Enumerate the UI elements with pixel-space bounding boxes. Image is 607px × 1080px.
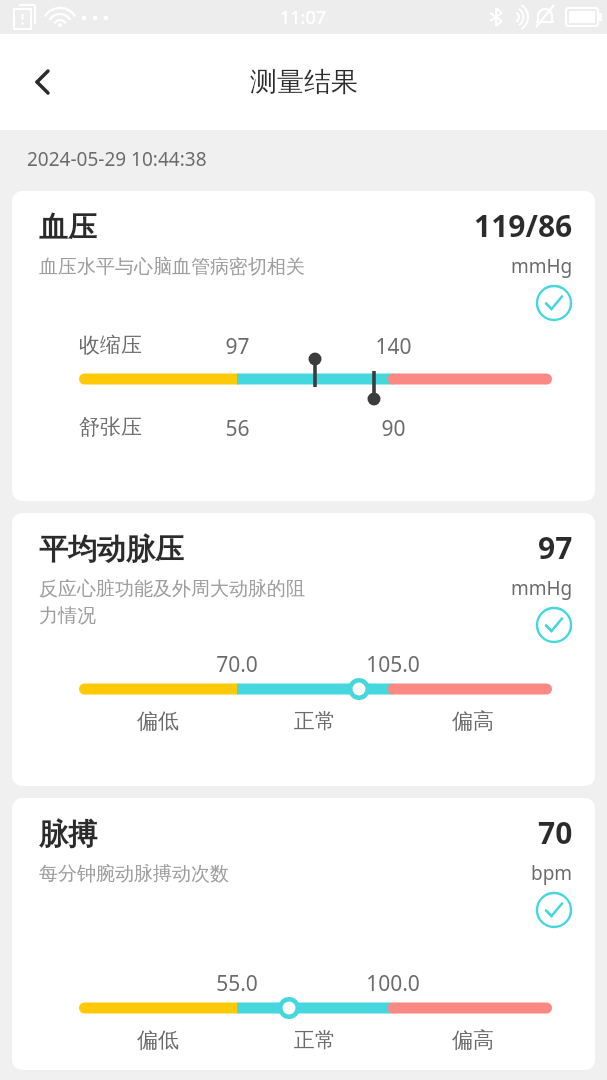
staticText: 测量结果 [250, 65, 358, 99]
staticText: 56 [225, 414, 250, 443]
button[interactable]: 血压 [12, 191, 595, 501]
staticText: 偏低 [137, 708, 179, 734]
staticText: 舒张压 [79, 414, 142, 440]
staticText: 2024-05-29 10:44:38 [27, 146, 207, 172]
staticText: 70.0 [216, 650, 258, 679]
staticText: 血压水平与心脑血管病密切相关 [39, 255, 305, 279]
button[interactable]: Back [8, 50, 72, 114]
staticText: mmHg [511, 575, 573, 601]
staticText: 反应心脏功能及外周大动脉的阻 力情况 [39, 577, 305, 628]
staticText: 97 [225, 332, 250, 361]
staticText: 收缩压 [79, 332, 142, 358]
staticText: mmHg [511, 253, 573, 279]
staticText: 偏高 [452, 1027, 494, 1053]
staticText: 平均动脉压 [39, 531, 184, 568]
staticText: 正常 [294, 708, 336, 734]
staticText: 100.0 [366, 969, 420, 998]
staticText: 脉搏 [39, 816, 97, 853]
staticText: 119/86 [474, 205, 573, 246]
button[interactable]: 脉搏 [12, 798, 595, 1070]
staticText: 97 [538, 527, 573, 568]
staticText: 90 [381, 414, 406, 443]
staticText: 140 [375, 332, 412, 361]
staticText: 55.0 [216, 969, 258, 998]
staticText: 正常 [294, 1027, 336, 1053]
staticText: 偏低 [137, 1027, 179, 1053]
staticText: 每分钟腕动脉搏动次数 [39, 862, 229, 886]
staticText: 血压 [39, 209, 97, 246]
staticText: 105.0 [366, 650, 420, 679]
staticText: 70 [538, 812, 573, 853]
staticText: bpm [531, 860, 573, 886]
staticText: 偏高 [452, 708, 494, 734]
staticText: 11:07 [280, 5, 327, 30]
button[interactable]: 平均动脉压 [12, 513, 595, 786]
